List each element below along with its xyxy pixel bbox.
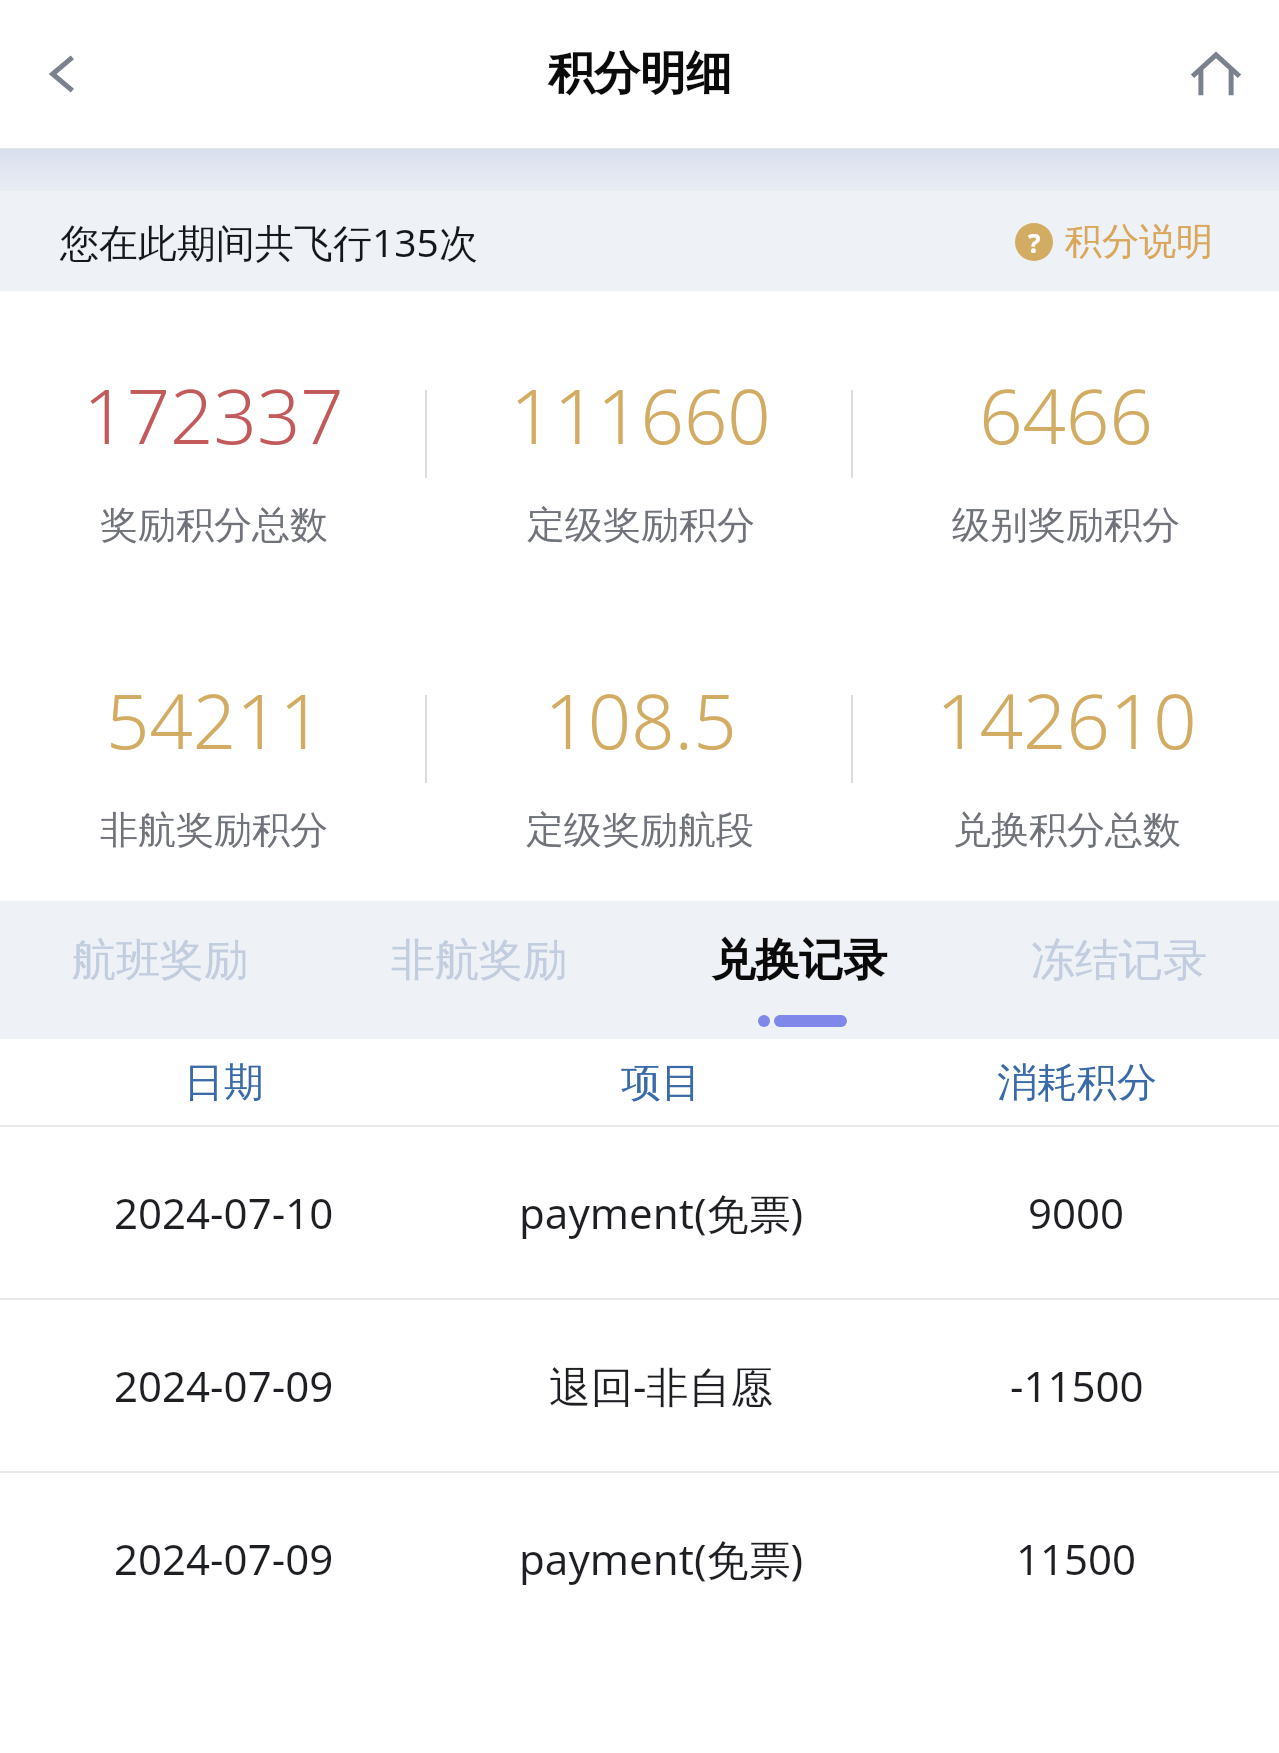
staticText: 9000: [1028, 1184, 1125, 1241]
staticText: 积分明细: [548, 45, 732, 103]
button[interactable]: 2024-07-10: [0, 1127, 1279, 1298]
staticText: 积分说明: [1065, 218, 1213, 265]
staticText: 定级奖励积分: [527, 501, 755, 549]
staticText: 111660: [510, 363, 771, 467]
staticText: 6466: [979, 363, 1153, 467]
staticText: 142610: [936, 668, 1197, 772]
staticText: 非航奖励积分: [100, 806, 328, 854]
staticText: 您在此期间共飞行135次: [60, 215, 478, 268]
staticText: 级别奖励积分: [952, 501, 1180, 549]
staticText: 兑换记录: [711, 933, 887, 988]
button[interactable]: 2024-07-09: [0, 1473, 1279, 1644]
button[interactable]: 2024-07-09: [0, 1300, 1279, 1471]
staticText: 航班奖励: [72, 933, 248, 988]
button[interactable]: Home: [1173, 31, 1259, 117]
staticText: 2024-07-09: [114, 1530, 334, 1587]
staticText: payment(免票): [519, 1184, 804, 1241]
staticText: 54211: [106, 668, 323, 772]
button[interactable]: 航班奖励: [0, 901, 319, 1019]
staticText: 兑换积分总数: [953, 806, 1181, 854]
staticText: payment(免票): [519, 1530, 804, 1587]
staticText: 108.5: [544, 668, 737, 772]
staticText: ?: [1028, 225, 1041, 260]
button[interactable]: Back: [20, 31, 106, 117]
button[interactable]: 非航奖励: [319, 901, 639, 1019]
staticText: 2024-07-09: [114, 1357, 334, 1414]
staticText: 2024-07-10: [114, 1184, 334, 1241]
staticText: 奖励积分总数: [100, 501, 328, 549]
button[interactable]: 兑换记录: [639, 901, 959, 1019]
staticText: 定级奖励航段: [526, 806, 754, 854]
staticText: 项目: [621, 1057, 701, 1107]
button[interactable]: 冻结记录: [959, 901, 1279, 1019]
staticText: 日期: [184, 1057, 264, 1107]
staticText: 172337: [83, 363, 344, 467]
button[interactable]: ?: [1009, 212, 1219, 271]
staticText: -11500: [1010, 1357, 1144, 1414]
staticText: 消耗积分: [997, 1057, 1157, 1107]
staticText: 非航奖励: [391, 933, 567, 988]
staticText: 退回-非自愿: [549, 1357, 773, 1414]
staticText: 11500: [1016, 1530, 1137, 1587]
staticText: 冻结记录: [1031, 933, 1207, 988]
